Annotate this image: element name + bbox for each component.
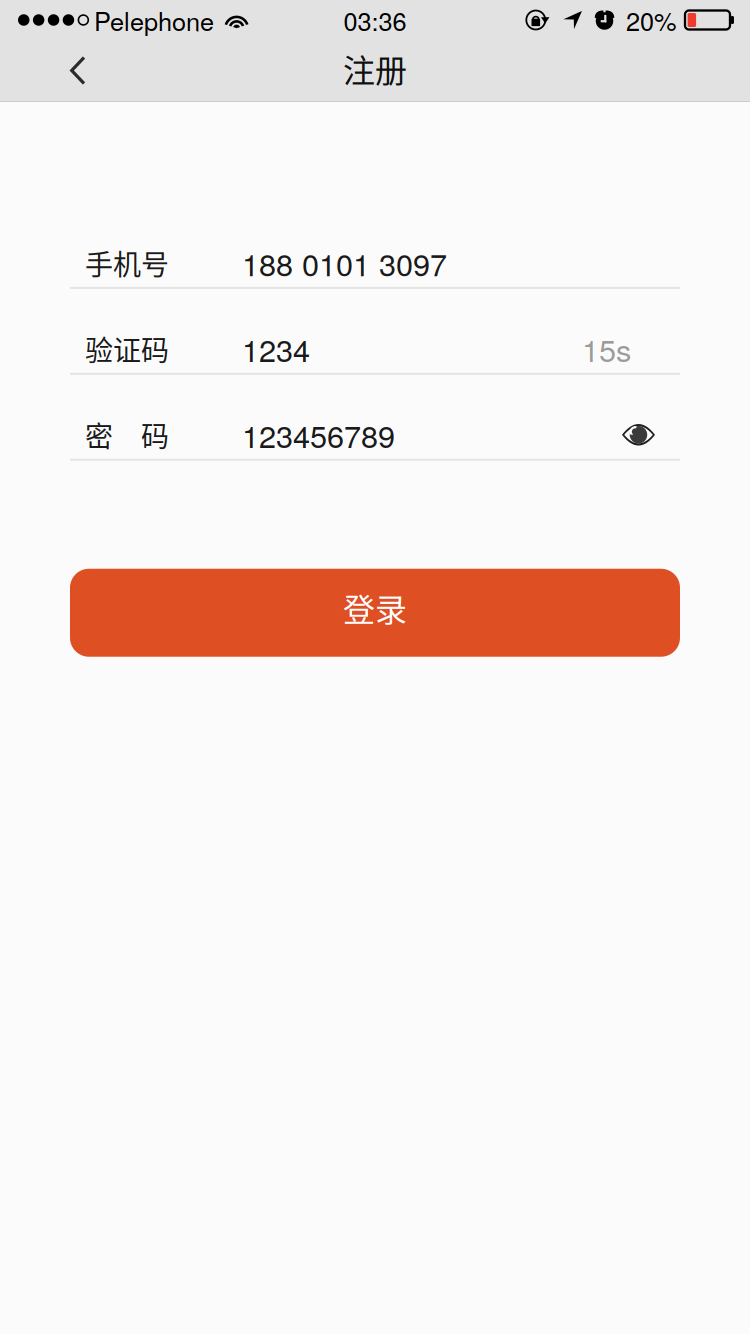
staticText: 15s — [582, 327, 631, 371]
staticText: 123456789 — [242, 413, 395, 457]
staticText: 1234 — [242, 327, 310, 371]
staticText: 03:36 — [343, 2, 406, 38]
staticText: 登录 — [343, 585, 407, 631]
staticText: 20% — [626, 2, 677, 38]
button[interactable]: 15s — [582, 327, 680, 371]
staticText: 验证码 — [85, 329, 169, 369]
staticText: 密 码 — [85, 414, 169, 455]
button[interactable]: Back — [44, 40, 112, 101]
staticText: Pelephone — [94, 2, 214, 38]
button[interactable]: 登录 — [70, 569, 680, 657]
staticText: 188 0101 3097 — [242, 241, 447, 285]
button[interactable]: Show password — [622, 424, 680, 446]
staticText: 注册 — [343, 45, 407, 92]
staticText: 手机号 — [85, 243, 169, 283]
